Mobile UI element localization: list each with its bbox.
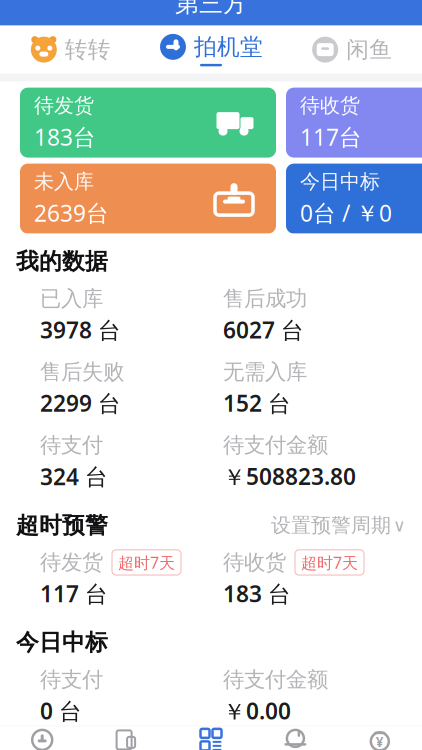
staticText: 无需入库 [223,359,307,385]
staticText: ￥0.00 [223,696,291,726]
staticText: 今日中标 [300,169,380,194]
staticText: 117台 [300,122,362,152]
button[interactable]: 转转 [0,26,141,74]
staticText: 今日中标 [16,629,108,656]
button[interactable]: 未入库 [20,164,276,234]
staticText: 已入库 [40,285,103,312]
staticText: ∨ [393,516,406,535]
staticText: 待收货 [223,549,286,575]
staticText: 324 台 [40,461,108,491]
staticText: 0 台 [40,696,82,726]
button[interactable]: 第三方 [169,726,253,750]
staticText: 超时7天 [118,552,175,573]
staticText: 2299 台 [40,388,121,418]
staticText: 售后失败 [40,359,124,385]
staticText: 183台 [34,122,96,152]
staticText: 售后成功 [223,285,307,312]
staticText: 152 台 [223,388,291,418]
staticText: 6027 台 [223,315,304,345]
staticText: 我的数据 [16,248,108,275]
button[interactable]: 回收报价 [253,726,338,750]
staticText: 待支付金额 [223,666,328,693]
staticText: 待发货 [34,93,94,118]
staticText: 转转 [65,36,111,63]
staticText: 待支付 [40,666,103,693]
staticText: 超时7天 [301,552,358,573]
staticText: 2639台 [34,198,109,228]
button[interactable]: 待发货 [20,88,276,158]
button[interactable]: 拍机堂 [141,26,281,74]
button[interactable]: 闲鱼 [281,26,422,74]
staticText: 超时预警 [16,511,108,539]
staticText: 117 台 [40,578,108,609]
button[interactable]: 首页 [0,726,84,750]
staticText: 待支付 [40,432,103,458]
button[interactable]: 报表 [84,726,169,750]
staticText: ￥508823.80 [223,461,356,491]
staticText: 拍机堂 [194,33,263,61]
staticText: 闲鱼 [346,36,392,63]
staticText: 183 台 [223,578,291,609]
button[interactable]: 设置预警周期 [271,513,406,538]
button[interactable]: ¥ [338,726,422,750]
staticText: 未入库 [34,169,94,194]
button[interactable]: 今日中标 [286,164,422,234]
button[interactable]: 待收货 [286,88,422,158]
staticText: 设置预警周期 [271,513,391,538]
staticText: 0台 / ￥0 [300,198,392,228]
staticText: 待收货 [300,93,360,118]
staticText: 待支付金额 [223,432,328,458]
staticText: 第三方 [175,0,247,18]
staticText: ¥ [376,733,384,750]
staticText: 待发货 [40,549,103,575]
staticText: 3978 台 [40,315,121,345]
